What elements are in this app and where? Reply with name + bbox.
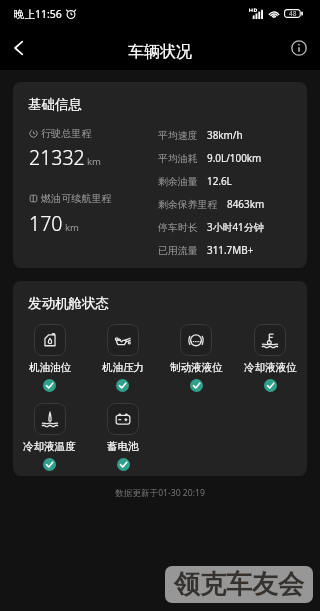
staticText: 3小时41分钟 — [207, 220, 264, 234]
staticText: 数据更新于01-30 20:19 — [0, 487, 320, 499]
staticText: 基础信息 — [28, 96, 82, 113]
button[interactable]: 冷却液液位 — [233, 324, 307, 392]
staticText: 行驶总里程 — [41, 127, 92, 140]
staticText: 晚上11:56 — [14, 7, 62, 21]
staticText: 已用流量 — [158, 244, 198, 256]
staticText: 剩余油量 — [158, 175, 198, 187]
staticText: 21332 — [29, 144, 85, 171]
staticText: 制动液液位 — [170, 361, 223, 374]
button[interactable]: 机油油位 — [13, 324, 86, 392]
staticText: 311.7MB+ — [207, 243, 254, 256]
staticText: 170 — [29, 210, 63, 237]
staticText: 8463km — [227, 197, 265, 210]
staticText: 冷却液液位 — [244, 361, 297, 374]
staticText: 平均速度 — [158, 129, 198, 141]
button[interactable]: 冷却液温度 — [13, 403, 86, 471]
button[interactable]: 制动液液位 — [159, 324, 233, 392]
button[interactable]: Info — [281, 26, 317, 70]
button[interactable]: Back — [0, 26, 36, 70]
staticText: 车辆状况 — [128, 42, 192, 62]
staticText: 剩余保养里程 — [158, 198, 218, 210]
button[interactable]: 蓄电池 — [86, 403, 160, 471]
staticText: 平均油耗 — [158, 152, 198, 164]
staticText: 机油油位 — [29, 361, 71, 374]
staticText: km — [87, 155, 101, 168]
staticText: 机油压力 — [102, 361, 144, 374]
staticText: 发动机舱状态 — [28, 295, 109, 312]
button[interactable]: 机油压力 — [86, 324, 159, 392]
staticText: 冷却液温度 — [23, 440, 76, 453]
staticText: 9.0L/100km — [207, 151, 262, 164]
staticText: 领克车友会 — [174, 568, 304, 601]
staticText: 12.6L — [207, 174, 232, 187]
staticText: 38km/h — [207, 128, 243, 141]
staticText: 燃油可续航里程 — [41, 192, 112, 205]
staticText: km — [65, 221, 79, 234]
staticText: 停车时长 — [158, 221, 198, 233]
staticText: 48 — [289, 9, 297, 18]
staticText: 蓄电池 — [107, 440, 139, 453]
